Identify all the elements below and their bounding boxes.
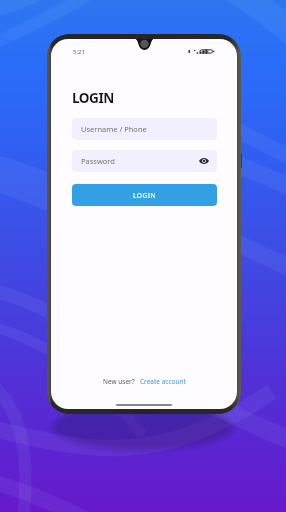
button[interactable]: LOGIN — [72, 184, 217, 206]
button[interactable]: Show password — [198, 155, 210, 167]
staticText: 5:21 — [73, 48, 85, 56]
button[interactable]: Username / Phone — [72, 118, 217, 140]
button[interactable]: Password — [72, 150, 217, 172]
staticText: Create account — [140, 377, 186, 386]
staticText: LOGIN — [133, 191, 156, 200]
button[interactable]: Create account — [140, 377, 186, 386]
staticText: LOGIN — [72, 88, 114, 107]
staticText: Password — [81, 156, 115, 166]
staticText: New user? — [103, 377, 135, 386]
staticText: Username / Phone — [81, 124, 147, 134]
